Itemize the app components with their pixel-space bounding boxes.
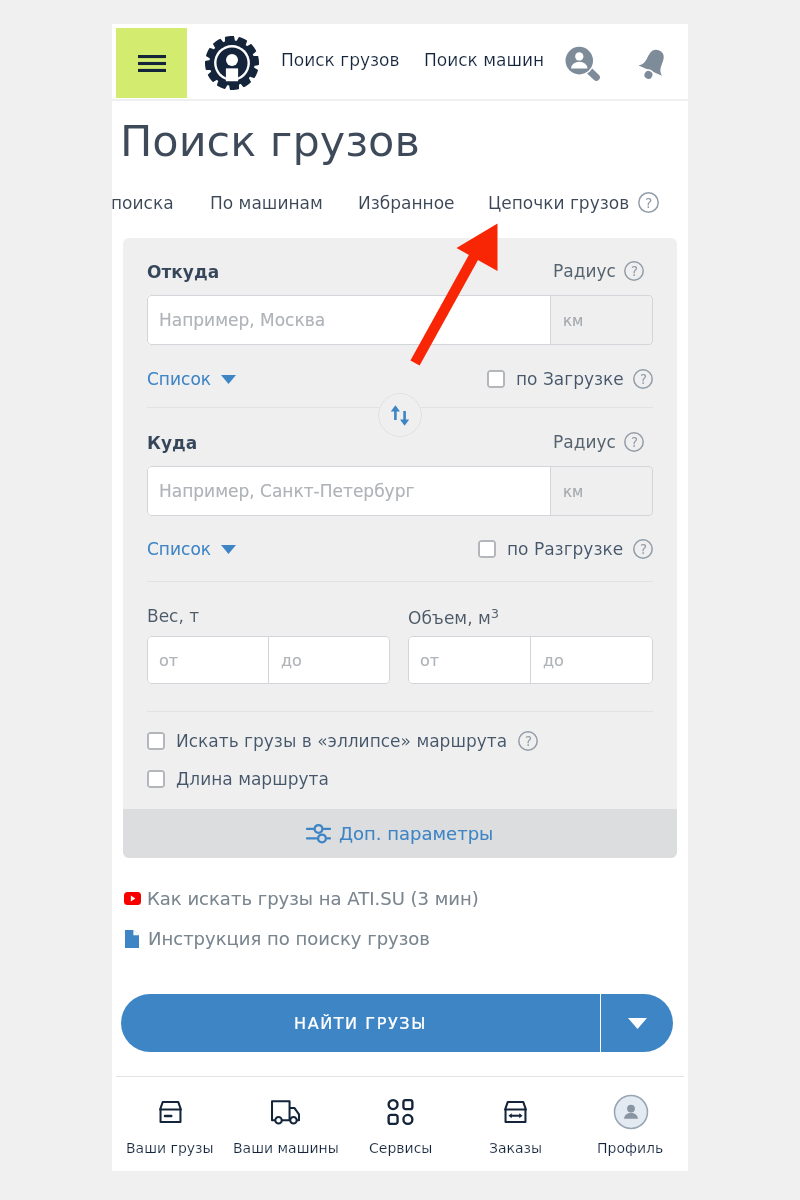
button[interactable]: Поиск машин xyxy=(424,50,545,70)
staticText: Сервисы xyxy=(369,1140,433,1156)
button[interactable]: Доп. параметры xyxy=(123,809,677,858)
staticText: Профиль xyxy=(597,1140,664,1156)
staticText: Как искать грузы на ATI.SU (3 мин) xyxy=(147,888,479,909)
staticText: км xyxy=(563,312,584,329)
button[interactable]: Длина маршрута xyxy=(147,769,329,789)
button[interactable]: по Разгрузке xyxy=(478,539,624,559)
staticText: Список xyxy=(147,369,212,389)
button[interactable]: поиска xyxy=(112,193,174,213)
staticText: ? xyxy=(631,435,638,450)
button[interactable]: Ваши грузы xyxy=(112,1077,228,1171)
button[interactable]: Help xyxy=(624,261,644,281)
button[interactable]: Заказы xyxy=(458,1077,573,1171)
button[interactable]: Notifications xyxy=(634,44,672,82)
staticText: Например, Санкт-Петербург xyxy=(159,481,415,501)
button[interactable]: Профиль xyxy=(573,1077,688,1171)
button[interactable]: Find user xyxy=(563,44,601,82)
button[interactable]: Help xyxy=(638,192,659,213)
staticText: км xyxy=(563,483,584,500)
button[interactable]: км xyxy=(551,466,653,516)
staticText: Объем, м3 xyxy=(408,606,500,628)
button[interactable]: Например, Москва xyxy=(147,295,550,345)
button[interactable]: Help xyxy=(624,432,644,452)
staticText: Цепочки грузов xyxy=(488,193,630,213)
staticText: По машинам xyxy=(210,193,323,213)
staticText: Радиус xyxy=(553,432,616,452)
button[interactable]: до xyxy=(531,636,653,684)
staticText: от xyxy=(159,651,179,670)
staticText: поиска xyxy=(112,193,174,213)
staticText: Ваши машины xyxy=(233,1140,339,1156)
button[interactable]: Избранное xyxy=(358,193,455,213)
staticText: Доп. параметры xyxy=(339,823,494,844)
staticText: ? xyxy=(640,372,647,387)
button[interactable]: Help xyxy=(633,369,653,389)
staticText: Заказы xyxy=(489,1140,543,1156)
button[interactable]: Список xyxy=(147,369,236,389)
button[interactable]: Цепочки грузов xyxy=(488,193,630,213)
staticText: до xyxy=(543,651,564,670)
staticText: Инструкция по поиску грузов xyxy=(148,928,430,949)
staticText: Список xyxy=(147,539,212,559)
staticText: Ваши грузы xyxy=(126,1140,214,1156)
staticText: до xyxy=(281,651,302,670)
staticText: ? xyxy=(525,734,532,749)
button[interactable]: км xyxy=(551,295,653,345)
button[interactable]: Menu xyxy=(116,28,187,98)
staticText: Поиск машин xyxy=(424,50,545,70)
button[interactable]: ATI.SU xyxy=(204,35,260,91)
button[interactable]: Искать грузы в «эллипсе» маршрута xyxy=(147,731,508,751)
staticText: Избранное xyxy=(358,193,455,213)
staticText: Длина маршрута xyxy=(176,769,329,789)
staticText: Откуда xyxy=(147,262,220,282)
button[interactable]: Ваши машины xyxy=(228,1077,343,1171)
button[interactable]: Help xyxy=(633,539,653,559)
button[interactable]: Например, Санкт-Петербург xyxy=(147,466,550,516)
button[interactable]: Swap from and to xyxy=(378,393,422,437)
button[interactable]: More search options xyxy=(601,994,673,1052)
staticText: ? xyxy=(631,264,638,279)
staticText: Радиус xyxy=(553,261,616,281)
staticText: по Загрузке xyxy=(516,369,624,389)
staticText: по Разгрузке xyxy=(507,539,624,559)
staticText: от xyxy=(420,651,440,670)
button[interactable]: от xyxy=(147,636,268,684)
button[interactable]: по Загрузке xyxy=(487,369,624,389)
staticText: Поиск грузов xyxy=(281,50,400,70)
button[interactable]: Инструкция по поиску грузов xyxy=(125,928,430,949)
staticText: Например, Москва xyxy=(159,310,326,330)
button[interactable]: Поиск грузов xyxy=(281,50,400,70)
button[interactable]: от xyxy=(408,636,530,684)
button[interactable]: до xyxy=(269,636,390,684)
button[interactable]: Как искать грузы на ATI.SU (3 мин) xyxy=(124,888,479,909)
button[interactable]: Сервисы xyxy=(343,1077,458,1171)
staticText: Поиск грузов xyxy=(120,116,420,166)
staticText: ? xyxy=(645,195,653,211)
button[interactable]: НАЙТИ ГРУЗЫ xyxy=(121,994,600,1052)
button[interactable]: Help xyxy=(518,731,538,751)
staticText: Искать грузы в «эллипсе» маршрута xyxy=(176,731,508,751)
button[interactable]: Список xyxy=(147,539,236,559)
staticText: НАЙТИ ГРУЗЫ xyxy=(294,1014,427,1033)
staticText: Вес, т xyxy=(147,606,200,626)
staticText: ? xyxy=(640,542,647,557)
button[interactable]: По машинам xyxy=(210,193,323,213)
staticText: Куда xyxy=(147,433,198,453)
